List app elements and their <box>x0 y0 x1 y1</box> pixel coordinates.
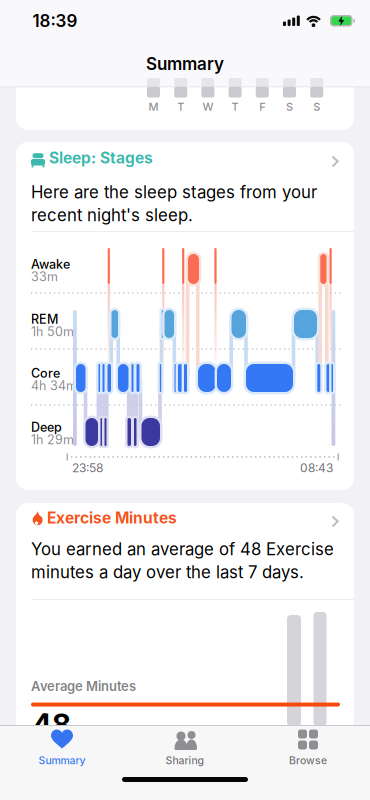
staticText: You earned an average of 48 Exercise <box>31 539 334 559</box>
button[interactable]: Weekly summary card <box>0 0 338 70</box>
staticText: 23:58 <box>72 460 103 475</box>
staticText: Deep <box>31 420 62 435</box>
staticText: 33m <box>31 269 58 284</box>
button[interactable]: Summary <box>0 725 123 775</box>
staticText: S <box>286 100 293 113</box>
staticText: W <box>202 100 213 113</box>
staticText: 18:39 <box>32 10 77 31</box>
button[interactable]: Sleep: Stages <box>0 0 370 800</box>
staticText: 08:43 <box>300 460 333 475</box>
staticText: minutes a day over the last 7 days. <box>31 562 304 582</box>
staticText: recent night's sleep. <box>31 205 193 225</box>
staticText: S <box>313 100 320 113</box>
staticText: Core <box>31 366 60 381</box>
staticText: Sharing <box>165 754 204 767</box>
staticText: T <box>232 100 239 113</box>
staticText: Browse <box>289 754 327 767</box>
button[interactable]: Exercise Minutes <box>0 0 338 260</box>
staticText: Awake <box>31 257 70 272</box>
staticText: REM <box>31 312 58 327</box>
staticText: Sleep: Stages <box>49 148 153 167</box>
staticText: F <box>259 100 265 113</box>
staticText: 4h 34m <box>31 378 77 393</box>
button[interactable]: Sharing <box>123 725 246 775</box>
staticText: Average Minutes <box>31 678 136 694</box>
staticText: Summary <box>38 754 85 767</box>
staticText: Summary <box>146 53 224 74</box>
button[interactable]: Browse <box>246 725 369 775</box>
staticText: M <box>148 100 158 113</box>
staticText: T <box>177 100 184 113</box>
staticText: 1h 50m <box>31 324 74 339</box>
staticText: Here are the sleep stages from your <box>31 182 317 202</box>
staticText: 48 <box>32 706 71 743</box>
staticText: 1h 29m <box>31 432 74 447</box>
staticText: Exercise Minutes <box>47 508 177 527</box>
